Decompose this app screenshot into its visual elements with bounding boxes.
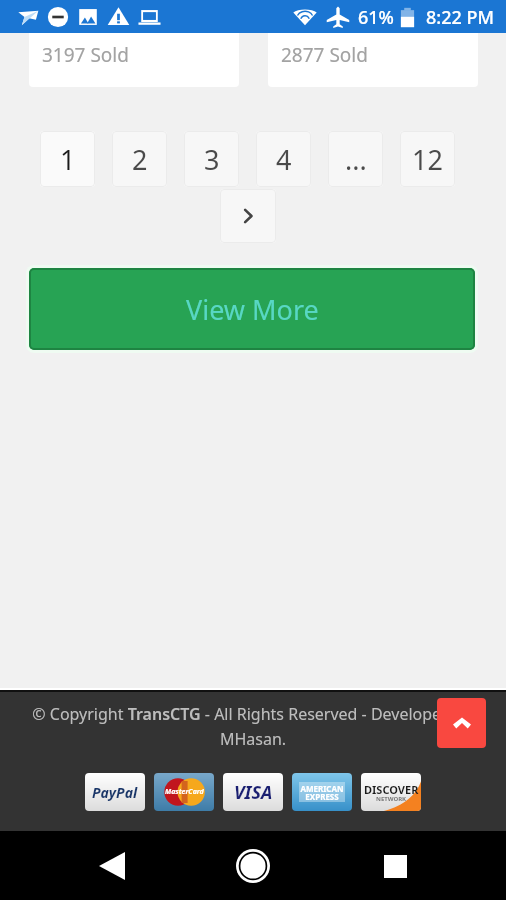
staticText: 4 [276,141,292,178]
staticText: 61% [358,5,394,30]
staticText: 2877 Sold [281,42,368,68]
staticText: DISCOVER [364,782,419,797]
staticText: AMERICAN EXPRESS [300,783,344,802]
staticText: ... [345,141,367,178]
button[interactable]: 2877 Sold [268,33,478,87]
staticText: 8:22 PM [426,5,494,30]
button[interactable]: 1 [40,131,95,187]
button[interactable]: DISCOVER [361,773,421,811]
button[interactable]: 12 [400,131,455,187]
button[interactable]: PayPal [85,773,145,811]
button[interactable]: View More [29,268,475,350]
button[interactable]: ... [328,131,383,187]
button[interactable]: 4 [256,131,311,187]
staticText: NETWORK [376,795,407,803]
staticText: View More [186,291,319,328]
staticText: © Copyright TransCTG - All Rights Reserv… [16,703,490,749]
button[interactable]: AMERICAN EXPRESS [292,773,352,811]
button[interactable]: Next page [220,189,276,243]
button[interactable]: VISA [223,773,283,811]
staticText: MasterCard [165,787,204,797]
staticText: PayPal [92,783,138,802]
staticText: 3197 Sold [42,42,129,68]
staticText: 12 [412,141,443,178]
staticText: 2 [132,141,148,178]
staticText: VISA [234,780,273,805]
button[interactable]: Back [82,836,142,896]
button[interactable]: 3197 Sold [29,33,239,87]
button[interactable]: 2 [112,131,167,187]
button[interactable]: Home [223,836,283,896]
button[interactable]: Recent apps [365,836,425,896]
button[interactable]: Back to top [437,698,486,748]
button[interactable]: MasterCard [154,773,214,811]
button[interactable]: 3 [184,131,239,187]
staticText: 1 [60,141,76,178]
staticText: 3 [204,141,220,178]
